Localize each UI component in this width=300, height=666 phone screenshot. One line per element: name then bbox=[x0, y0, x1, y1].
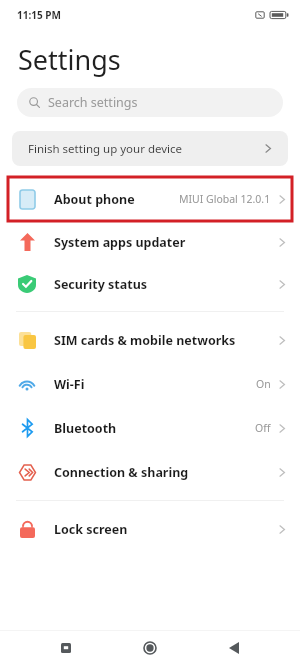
button[interactable]: Security status bbox=[0, 263, 300, 305]
staticText: Off bbox=[255, 421, 271, 435]
staticText: MIUI Global 12.0.1 bbox=[179, 192, 271, 206]
button[interactable]: Back bbox=[216, 630, 252, 666]
button[interactable]: Wi-Fi bbox=[0, 362, 300, 406]
staticText: Finish setting up your device bbox=[28, 141, 264, 157]
button[interactable]: About phone bbox=[0, 177, 300, 221]
staticText: Connection & sharing bbox=[54, 464, 278, 481]
button[interactable]: Home bbox=[132, 630, 168, 666]
button[interactable]: SIM cards & mobile networks bbox=[0, 318, 300, 362]
staticText: Search settings bbox=[48, 94, 138, 111]
button[interactable]: Connection & sharing bbox=[0, 450, 300, 494]
button[interactable]: Lock screen bbox=[0, 507, 300, 551]
staticText: Lock screen bbox=[54, 521, 278, 538]
staticText: On bbox=[256, 377, 271, 391]
staticText: SIM cards & mobile networks bbox=[54, 332, 278, 349]
staticText: System apps updater bbox=[54, 234, 278, 251]
button[interactable]: System apps updater bbox=[0, 221, 300, 263]
staticText: About phone bbox=[54, 191, 179, 208]
button[interactable]: Recent apps bbox=[48, 630, 84, 666]
button[interactable]: Finish setting up your device bbox=[12, 131, 288, 166]
button[interactable]: Bluetooth bbox=[0, 406, 300, 450]
staticText: 11:15 PM bbox=[17, 8, 61, 22]
button[interactable]: Search settings bbox=[17, 88, 283, 117]
staticText: Wi-Fi bbox=[54, 376, 256, 393]
staticText: Bluetooth bbox=[54, 420, 255, 437]
staticText: Settings bbox=[18, 41, 121, 78]
staticText: Security status bbox=[54, 276, 278, 293]
